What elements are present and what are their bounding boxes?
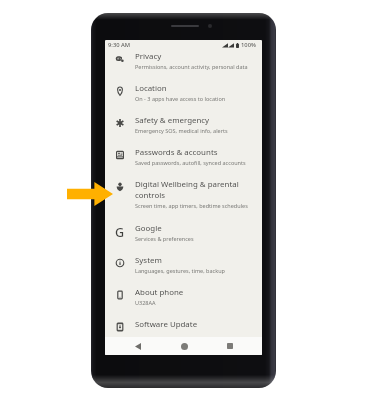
button[interactable]: About phone bbox=[105, 276, 262, 308]
staticText: Languages, gestures, time, backup bbox=[135, 267, 225, 274]
button[interactable]: G bbox=[105, 212, 262, 244]
button[interactable]: Privacy bbox=[105, 40, 262, 72]
staticText: Software Update bbox=[135, 319, 198, 330]
staticText: System bbox=[135, 255, 162, 266]
staticText: Services & preferences bbox=[135, 235, 194, 242]
staticText: Location bbox=[135, 83, 167, 94]
staticText: Digital Wellbeing & parental bbox=[135, 179, 239, 190]
staticText: Permissions, account activity, personal … bbox=[135, 63, 248, 70]
button[interactable]: Software Update bbox=[105, 308, 262, 340]
button[interactable]: Passwords & accounts bbox=[105, 136, 262, 168]
button[interactable]: Location bbox=[105, 72, 262, 104]
staticText: On - 3 apps have access to location bbox=[135, 95, 226, 102]
staticText: controls bbox=[135, 190, 165, 201]
button[interactable]: Back bbox=[127, 337, 149, 355]
staticText: Safety & emergency bbox=[135, 115, 210, 126]
staticText: Passwords & accounts bbox=[135, 147, 218, 158]
button[interactable]: Digital Wellbeing & parental bbox=[105, 162, 262, 206]
staticText: About phone bbox=[135, 287, 184, 298]
staticText: Emergency SOS, medical info, alerts bbox=[135, 127, 228, 134]
staticText: Google bbox=[135, 223, 162, 234]
button[interactable]: Home bbox=[173, 337, 195, 355]
staticText: Screen time, app timers, bedtime schedul… bbox=[135, 202, 248, 209]
staticText: 9:30 AM bbox=[108, 41, 131, 49]
staticText: Privacy bbox=[135, 51, 162, 62]
button[interactable]: Safety & emergency bbox=[105, 104, 262, 136]
button[interactable]: System bbox=[105, 244, 262, 276]
staticText: U328AA bbox=[135, 299, 156, 306]
staticText: G bbox=[115, 224, 125, 238]
staticText: 100% bbox=[241, 41, 256, 49]
staticText: Saved passwords, autofill, synced accoun… bbox=[135, 159, 246, 166]
button[interactable]: Recents bbox=[219, 337, 241, 355]
